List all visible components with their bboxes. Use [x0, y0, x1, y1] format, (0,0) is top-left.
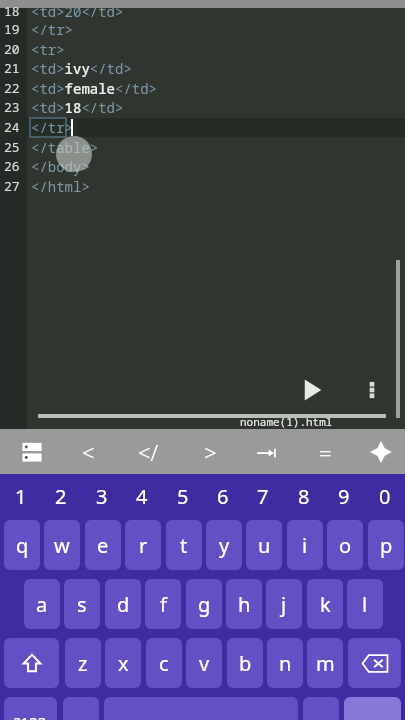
staticText: </tr> — [31, 20, 73, 39]
button[interactable]: r — [125, 520, 161, 570]
staticText: noname(1).html — [240, 414, 333, 429]
button[interactable]: p — [368, 520, 404, 570]
staticText: ?123 — [14, 712, 47, 720]
button[interactable]: 0 — [365, 478, 405, 514]
button[interactable]: Shift — [4, 638, 59, 688]
staticText: 23 — [4, 98, 20, 116]
button[interactable]: Less than — [66, 429, 110, 474]
button[interactable]: x — [105, 638, 141, 688]
staticText: 22 — [4, 79, 20, 97]
button[interactable]: e — [85, 520, 121, 570]
button[interactable]: y — [206, 520, 242, 570]
staticText: e — [97, 532, 109, 559]
staticText: 4 — [136, 483, 148, 510]
staticText: p — [380, 532, 393, 559]
staticText: 20 — [4, 40, 20, 58]
staticText: w — [54, 532, 70, 559]
staticText: <td>female</td> — [31, 79, 157, 98]
staticText: m — [316, 650, 335, 677]
button[interactable]: f — [145, 579, 181, 629]
staticText: u — [258, 532, 271, 559]
staticText: i — [302, 532, 308, 559]
button[interactable]: h — [226, 579, 262, 629]
staticText: 27 — [4, 177, 20, 195]
button[interactable]: u — [246, 520, 282, 570]
staticText: y — [219, 532, 230, 559]
staticText: o — [339, 532, 352, 559]
button[interactable]: ?123 — [4, 697, 57, 720]
button[interactable]: Close tag — [126, 429, 170, 474]
button[interactable]: 4 — [122, 478, 162, 514]
button[interactable]: 1 — [1, 478, 41, 514]
staticText: 0 — [379, 483, 391, 510]
button[interactable]: w — [44, 520, 80, 570]
button[interactable]: q — [4, 520, 40, 570]
staticText: 24 — [4, 118, 20, 136]
staticText: b — [239, 650, 252, 677]
staticText: 2 — [55, 483, 67, 510]
button[interactable]: More options — [352, 370, 392, 410]
button[interactable]: 3 — [82, 478, 122, 514]
button[interactable]: Equals — [303, 429, 347, 474]
button[interactable]: Emoji — [63, 697, 99, 720]
button[interactable]: Snippets — [10, 429, 54, 474]
button[interactable]: c — [146, 638, 182, 688]
staticText: <td>ivy</td> — [31, 59, 132, 78]
button[interactable]: 8 — [284, 478, 324, 514]
button[interactable]: i — [287, 520, 323, 570]
staticText: 19 — [4, 20, 20, 38]
staticText: 25 — [4, 138, 20, 156]
button[interactable]: m — [307, 638, 343, 688]
staticText: d — [117, 591, 130, 618]
staticText: = — [319, 437, 332, 467]
staticText: c — [159, 650, 169, 677]
button[interactable]: b — [227, 638, 263, 688]
staticText: < — [82, 437, 95, 467]
button[interactable]: Move cursor — [359, 429, 403, 474]
button[interactable]: Tab — [245, 429, 289, 474]
staticText: </ — [138, 437, 159, 467]
staticText: 21 — [4, 59, 20, 77]
button[interactable]: Period — [303, 697, 339, 720]
staticText: k — [320, 591, 331, 618]
button[interactable]: 2 — [41, 478, 81, 514]
staticText: j — [281, 591, 287, 618]
button[interactable]: z — [65, 638, 101, 688]
button[interactable]: 7 — [243, 478, 283, 514]
staticText: r — [139, 532, 148, 559]
staticText: <td>20</td> — [31, 2, 124, 21]
staticText: x — [118, 650, 129, 677]
button[interactable]: v — [186, 638, 222, 688]
staticText: n — [279, 650, 292, 677]
button[interactable]: g — [186, 579, 222, 629]
button[interactable]: t — [166, 520, 202, 570]
button[interactable]: Enter — [344, 697, 401, 720]
button[interactable]: Backspace — [348, 638, 401, 688]
button[interactable]: k — [307, 579, 343, 629]
button[interactable]: 5 — [163, 478, 203, 514]
button[interactable]: n — [267, 638, 303, 688]
staticText: <td>18</td> — [31, 98, 124, 117]
staticText: 3 — [96, 483, 108, 510]
button[interactable]: j — [266, 579, 302, 629]
staticText: q — [16, 532, 29, 559]
staticText: 26 — [4, 157, 20, 175]
staticText: l — [362, 591, 368, 618]
staticText: v — [199, 650, 210, 677]
staticText: 5 — [177, 483, 189, 510]
staticText: t — [180, 532, 188, 559]
button[interactable]: o — [327, 520, 363, 570]
button[interactable]: Greater than — [188, 429, 232, 474]
staticText: g — [198, 591, 211, 618]
button[interactable]: 9 — [324, 478, 364, 514]
staticText: </body> — [31, 157, 90, 176]
staticText: </tr> — [31, 118, 73, 137]
staticText: 1 — [15, 483, 27, 510]
button[interactable]: Run — [292, 370, 332, 410]
button[interactable]: l — [347, 579, 383, 629]
button[interactable]: s — [64, 579, 100, 629]
button[interactable]: 6 — [203, 478, 243, 514]
button[interactable]: d — [105, 579, 141, 629]
button[interactable]: a — [24, 579, 60, 629]
